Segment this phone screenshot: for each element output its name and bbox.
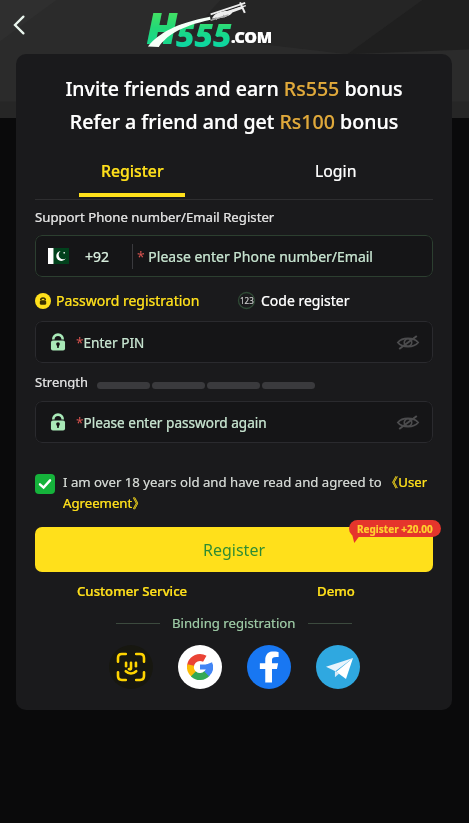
- button[interactable]: Customer Service: [76, 582, 188, 599]
- staticText: Invite friends and earn Rs555 bonus: [35, 75, 433, 102]
- button[interactable]: *Enter PIN: [35, 321, 433, 363]
- button[interactable]: I am over 18 years old and have read and…: [35, 473, 433, 512]
- staticText: H: [146, 0, 178, 44]
- staticText: Register: [203, 539, 266, 561]
- button[interactable]: Register: [78, 160, 186, 200]
- staticText: Register +20.00: [357, 522, 433, 536]
- staticText: I am over 18 years old and have read and…: [63, 473, 433, 512]
- staticText: Support Phone number/Email Register: [35, 208, 275, 226]
- button[interactable]: Password registration: [35, 291, 200, 310]
- button[interactable]: Show password: [396, 330, 420, 354]
- staticText: Login: [315, 160, 357, 182]
- button[interactable]: Register: [35, 527, 433, 572]
- button[interactable]: Login: [282, 160, 390, 200]
- button[interactable]: Sign in with Google: [178, 645, 222, 689]
- button[interactable]: Sign in with Facebook: [247, 645, 291, 689]
- button[interactable]: +92: [35, 235, 433, 277]
- staticText: +92: [85, 247, 110, 266]
- button[interactable]: Demo: [280, 582, 392, 599]
- staticText: Register: [101, 160, 164, 182]
- staticText: Password registration: [56, 291, 200, 310]
- button[interactable]: 123: [238, 291, 350, 310]
- button[interactable]: *Please enter password again: [35, 401, 433, 443]
- button[interactable]: Back: [1, 7, 37, 43]
- staticText: 555: [176, 13, 232, 57]
- staticText: *Please enter password again: [76, 413, 267, 432]
- staticText: *Enter PIN: [76, 333, 145, 352]
- staticText: Code register: [261, 291, 350, 310]
- staticText: Binding registration: [172, 614, 296, 632]
- button[interactable]: Face ID login: [109, 645, 153, 689]
- staticText: Demo: [317, 582, 355, 599]
- staticText: .COM: [231, 26, 272, 48]
- staticText: Customer Service: [77, 582, 188, 599]
- staticText: * Please enter Phone number/Email: [137, 247, 373, 266]
- button[interactable]: Sign in with Telegram: [316, 645, 360, 689]
- button[interactable]: Show password: [396, 410, 420, 434]
- staticText: Refer a friend and get Rs100 bonus: [35, 108, 433, 135]
- staticText: 123: [240, 295, 254, 306]
- staticText: Strength: [35, 373, 89, 389]
